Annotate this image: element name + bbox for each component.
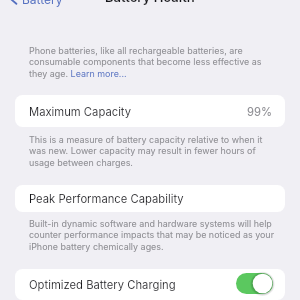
button[interactable]: Optimized Battery Charging toggle bbox=[236, 273, 273, 294]
button[interactable]: Battery bbox=[8, 0, 64, 9]
staticText: Peak Performance Capability bbox=[29, 192, 184, 206]
staticText: Phone batteries, like all rechargeable b… bbox=[29, 45, 274, 79]
staticText: Battery bbox=[22, 0, 63, 7]
staticText: 99% bbox=[247, 105, 272, 119]
staticText: Battery Health bbox=[105, 0, 195, 5]
button[interactable]: Maximum Capacity bbox=[15, 95, 285, 127]
staticText: Built-in dynamic software and hardware s… bbox=[29, 218, 278, 252]
staticText: This is a measure of battery capacity re… bbox=[29, 134, 278, 168]
staticText: Optimized Battery Charging bbox=[29, 278, 176, 292]
staticText: Maximum Capacity bbox=[29, 105, 132, 119]
button[interactable]: Peak Performance Capability bbox=[15, 185, 285, 212]
